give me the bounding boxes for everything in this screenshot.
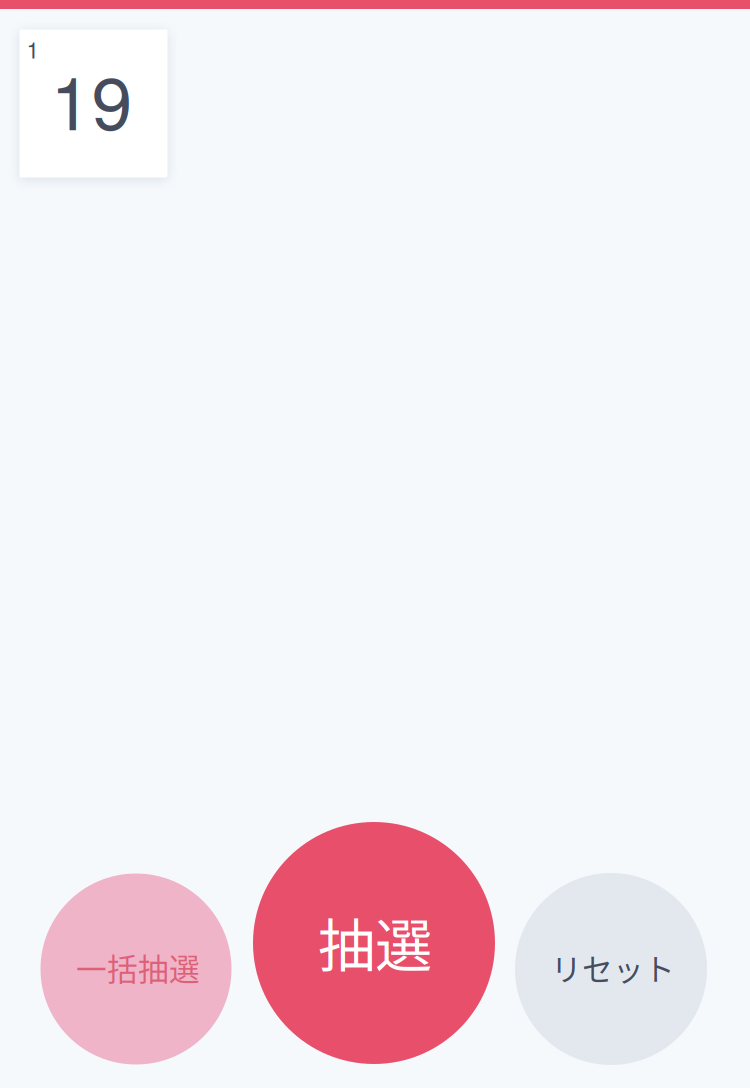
button[interactable]: 抽選結果 1: 19 (19, 29, 167, 177)
staticText: リセット (551, 945, 675, 990)
button[interactable]: 一括抽選 (40, 873, 231, 1064)
staticText: 一括抽選 (76, 945, 200, 990)
button[interactable]: 抽選 (253, 822, 495, 1064)
staticText: 1 (26, 32, 39, 65)
staticText: 19 (50, 46, 132, 151)
button[interactable]: リセット (515, 873, 707, 1065)
staticText: 抽選 (318, 900, 432, 983)
